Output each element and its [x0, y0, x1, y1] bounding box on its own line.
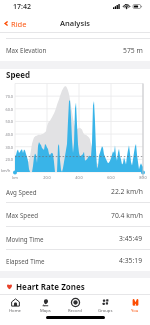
staticText: 60.0	[0, 107, 13, 112]
staticText: Speed	[6, 69, 31, 80]
staticText: Maps	[40, 308, 51, 314]
staticText: Record	[68, 308, 82, 314]
staticText: 3:45:49	[119, 234, 143, 243]
staticText: km/h	[1, 168, 11, 173]
staticText: Max Speed	[6, 211, 38, 219]
staticText: 40.0	[0, 132, 13, 137]
staticText: 70.0	[0, 94, 13, 99]
button[interactable]: Maps	[30, 297, 60, 314]
staticText: 30.0	[0, 145, 13, 150]
button[interactable]: Avg Speed	[0, 180, 150, 203]
staticText: km	[9, 175, 21, 180]
staticText: Elapsed Time	[6, 257, 45, 265]
staticText: 575 m	[123, 46, 143, 55]
staticText: 22.2 km/h	[111, 187, 143, 196]
staticText: 50.0	[0, 119, 13, 124]
staticText: You	[131, 308, 139, 314]
staticText: 80.0	[137, 175, 149, 180]
staticText: 20.0	[0, 157, 13, 162]
button[interactable]: Record	[60, 297, 90, 314]
button[interactable]: Max Elevation	[0, 39, 150, 61]
staticText: Home	[9, 308, 21, 314]
staticText: Ride	[11, 19, 27, 29]
button[interactable]: Max Speed	[0, 203, 150, 227]
button[interactable]: You	[120, 297, 150, 314]
button[interactable]: Heart Rate Zones	[0, 278, 150, 294]
staticText: 4:35:19	[119, 256, 143, 265]
staticText: Analysis	[60, 18, 90, 28]
staticText: 70.4 km/h	[111, 211, 143, 220]
staticText: 20.0	[41, 175, 53, 180]
staticText: 60.0	[105, 175, 117, 180]
staticText: Heart Rate Zones	[16, 281, 85, 292]
button[interactable]: Moving Time	[0, 227, 150, 250]
staticText: 17:42	[13, 2, 31, 12]
button[interactable]: Home	[0, 297, 30, 314]
button[interactable]: Elapsed Time	[0, 250, 150, 271]
button[interactable]: Groups	[90, 297, 120, 314]
staticText: Moving Time	[6, 235, 44, 243]
staticText: Max Elevation	[6, 46, 47, 54]
staticText: 40.0	[73, 175, 85, 180]
staticText: Avg Speed	[6, 188, 37, 196]
button[interactable]: Ride	[3, 14, 27, 33]
staticText: Groups	[98, 308, 113, 314]
